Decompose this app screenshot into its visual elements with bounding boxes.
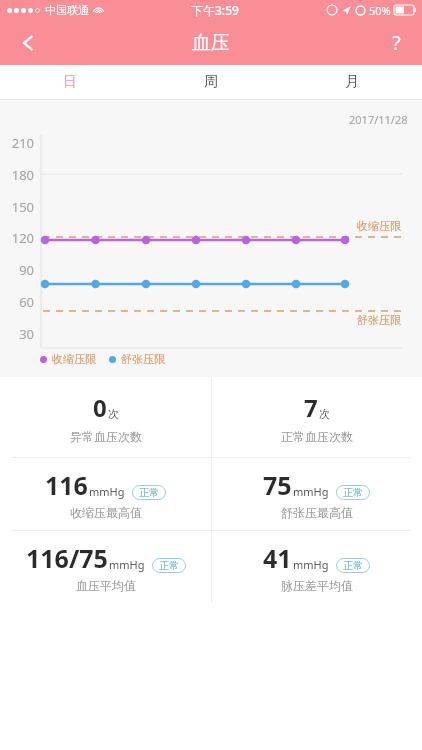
staticText: ? — [392, 29, 401, 56]
staticText: 180 — [0, 166, 34, 184]
button[interactable]: Help — [370, 20, 422, 65]
staticText: 正常 — [343, 559, 363, 572]
button[interactable]: 116/75 — [0, 531, 211, 603]
staticText: 异常血压次数 — [70, 429, 142, 444]
staticText: 50% — [369, 3, 391, 18]
staticText: 周 — [204, 73, 218, 91]
staticText: 正常血压次数 — [281, 429, 353, 444]
staticText: 收缩压最高值 — [70, 505, 142, 520]
staticText: 75 — [263, 468, 292, 502]
staticText: 下午3:59 — [191, 2, 239, 18]
staticText: 次 — [319, 407, 330, 421]
staticText: 脉压差平均值 — [281, 578, 353, 593]
button[interactable]: 日 — [0, 65, 140, 99]
staticText: 60 — [0, 293, 34, 311]
button[interactable]: 41 — [211, 531, 422, 603]
staticText: 舒张压限 — [121, 352, 165, 366]
staticText: 次 — [108, 407, 119, 421]
staticText: 150 — [0, 198, 34, 216]
staticText: 2017/11/28 — [349, 112, 408, 127]
staticText: 90 — [0, 261, 34, 279]
staticText: 0 — [93, 391, 107, 424]
button[interactable]: Back — [0, 20, 56, 65]
staticText: 舒张压限 — [357, 313, 401, 327]
staticText: mmHg — [293, 557, 329, 572]
staticText: 30 — [0, 325, 34, 343]
staticText: 收缩压限 — [357, 219, 401, 233]
staticText: 210 — [0, 134, 34, 152]
staticText: 7 — [304, 391, 318, 424]
staticText: 舒张压最高值 — [281, 505, 353, 520]
staticText: 正常 — [343, 486, 363, 499]
staticText: 月 — [345, 73, 359, 91]
button[interactable]: 116 — [0, 458, 211, 530]
staticText: 120 — [0, 229, 34, 247]
staticText: mmHg — [89, 484, 125, 499]
staticText: 116/75 — [26, 541, 108, 575]
staticText: mmHg — [109, 557, 145, 572]
staticText: 116 — [45, 468, 88, 502]
button[interactable]: 75 — [211, 458, 422, 530]
button[interactable]: 0 — [0, 377, 211, 457]
staticText: 正常 — [139, 486, 159, 499]
staticText: 41 — [263, 541, 292, 575]
staticText: mmHg — [293, 484, 329, 499]
staticText: 血压 — [192, 31, 230, 55]
button[interactable]: 7 — [211, 377, 422, 457]
staticText: 日 — [63, 73, 77, 91]
staticText: 正常 — [159, 559, 179, 572]
button[interactable]: 周 — [140, 65, 281, 99]
staticText: 中国联通 — [45, 3, 89, 17]
button[interactable]: 月 — [281, 65, 422, 99]
staticText: 血压平均值 — [76, 578, 136, 593]
staticText: 收缩压限 — [52, 352, 96, 366]
